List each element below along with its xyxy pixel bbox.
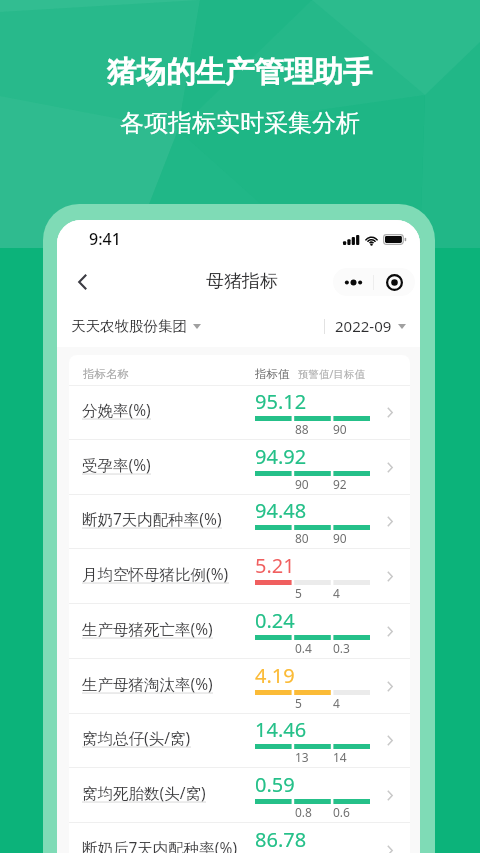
staticText: 0.8 xyxy=(295,804,312,820)
staticText: 0.3 xyxy=(333,640,350,656)
staticText: 窝均死胎数(头/窝) xyxy=(82,782,206,803)
staticText: 指标名称 xyxy=(83,367,129,381)
staticText: 指标值 xyxy=(255,367,290,381)
staticText: 80 xyxy=(295,530,309,546)
button[interactable]: Back xyxy=(65,265,99,299)
staticText: 94.92 xyxy=(255,443,307,470)
staticText: 4 xyxy=(333,585,340,601)
staticText: 9:41 xyxy=(89,228,121,250)
button[interactable]: 生产母猪死亡率(%) xyxy=(69,604,410,659)
button[interactable]: 月均空怀母猪比例(%) xyxy=(69,549,410,604)
staticText: 14.46 xyxy=(255,716,307,743)
staticText: 母猪指标 xyxy=(206,270,278,293)
staticText: 0.59 xyxy=(255,771,295,798)
staticText: 生产母猪死亡率(%) xyxy=(82,618,213,639)
button[interactable]: 分娩率(%) xyxy=(69,385,410,440)
button[interactable]: 受孕率(%) xyxy=(69,440,410,495)
button[interactable]: 2022-09 xyxy=(335,310,406,342)
button[interactable]: Menu xyxy=(333,268,415,296)
button[interactable]: 天天农牧股份集团 xyxy=(71,311,201,341)
staticText: 猪场的生产管理助手 xyxy=(107,54,373,91)
staticText: 月均空怀母猪比例(%) xyxy=(82,563,229,584)
staticText: 92 xyxy=(333,476,347,492)
staticText: 14 xyxy=(333,749,347,765)
staticText: 2022-09 xyxy=(335,316,392,336)
staticText: 90 xyxy=(333,421,347,437)
staticText: 0.4 xyxy=(295,640,312,656)
staticText: 0.24 xyxy=(255,607,295,634)
staticText: 95.12 xyxy=(255,388,307,415)
staticText: 90 xyxy=(333,530,347,546)
staticText: 88 xyxy=(295,421,309,437)
button[interactable]: 窝均总仔(头/窝) xyxy=(69,713,410,768)
button[interactable]: 窝均死胎数(头/窝) xyxy=(69,768,410,823)
staticText: 86.78 xyxy=(255,826,307,853)
staticText: 窝均总仔(头/窝) xyxy=(82,727,191,748)
staticText: 断奶7天内配种率(%) xyxy=(82,508,222,529)
staticText: 4.19 xyxy=(255,662,295,689)
staticText: 断奶后7天内配种率(%) xyxy=(82,837,238,853)
staticText: 预警值/目标值 xyxy=(298,367,365,381)
staticText: 各项指标实时采集分析 xyxy=(120,108,360,138)
staticText: 5 xyxy=(295,695,302,711)
staticText: 受孕率(%) xyxy=(82,454,151,475)
staticText: 生产母猪淘汰率(%) xyxy=(82,673,213,694)
staticText: 94.48 xyxy=(255,497,307,524)
staticText: 4 xyxy=(333,695,340,711)
staticText: 5.21 xyxy=(255,552,295,579)
staticText: 5 xyxy=(295,585,302,601)
staticText: 90 xyxy=(295,476,309,492)
button[interactable]: 断奶7天内配种率(%) xyxy=(69,494,410,549)
button[interactable]: 生产母猪淘汰率(%) xyxy=(69,659,410,714)
staticText: 0.6 xyxy=(333,804,350,820)
staticText: 13 xyxy=(295,749,309,765)
staticText: 分娩率(%) xyxy=(82,399,151,420)
staticText: 天天农牧股份集团 xyxy=(71,317,187,335)
button[interactable]: 断奶后7天内配种率(%) xyxy=(69,823,410,853)
